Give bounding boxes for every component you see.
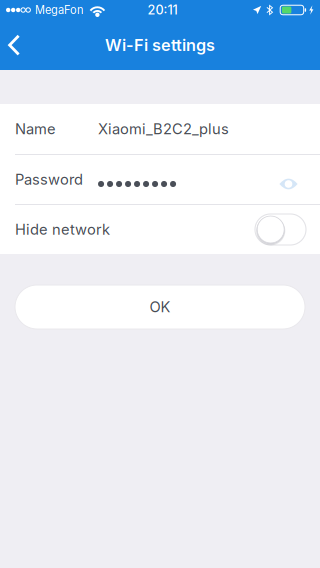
staticText: Name — [15, 120, 56, 138]
staticText: Wi-Fi settings — [105, 35, 215, 55]
staticText: 20:11 — [147, 2, 177, 18]
button[interactable]: Hide network — [255, 214, 306, 245]
staticText: Xiaomi_B2C2_plus — [98, 120, 229, 138]
staticText: OK — [149, 298, 170, 316]
button[interactable]: Show password — [272, 170, 305, 197]
staticText: Password — [15, 171, 83, 188]
button[interactable]: OK — [15, 285, 305, 329]
button[interactable]: Back — [0, 22, 36, 68]
staticText: MegaFon — [35, 3, 84, 17]
staticText: Hide network — [15, 221, 110, 238]
